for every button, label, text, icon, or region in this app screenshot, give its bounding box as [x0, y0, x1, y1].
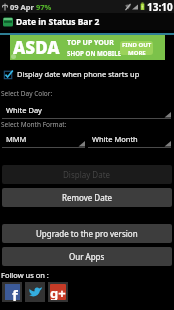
button[interactable]: White Day	[2, 103, 171, 119]
button[interactable]: FIND OUT	[120, 41, 153, 55]
staticText: 97%	[36, 2, 52, 12]
staticText: 13:10	[147, 0, 173, 13]
staticText: MMM	[6, 134, 27, 144]
staticText: Select Day Color:	[1, 89, 53, 98]
staticText: f	[12, 285, 18, 301]
staticText: Remove Date	[62, 192, 113, 203]
button[interactable]: Our Apps	[2, 247, 172, 266]
button[interactable]: Facebook	[2, 282, 22, 302]
button[interactable]: Upgrade to the pro version	[2, 224, 172, 243]
staticText: MORE	[128, 49, 146, 55]
staticText: Upgrade to the pro version	[36, 228, 138, 239]
staticText: White Day	[6, 105, 42, 115]
staticText: FIND OUT	[122, 41, 152, 49]
staticText: Display date when phone starts up	[17, 69, 140, 79]
staticText: Display Date	[63, 169, 111, 180]
button[interactable]: White Month	[88, 132, 171, 148]
staticText: TOP UP YOUR	[67, 38, 114, 48]
staticText: Date in Status Bar 2	[16, 16, 100, 28]
button[interactable]: Google Plus	[48, 282, 68, 302]
staticText: ASDA	[13, 36, 60, 59]
button[interactable]: Advertisement	[10, 35, 165, 60]
staticText: g+	[50, 284, 66, 300]
button[interactable]: MMM	[2, 132, 85, 148]
button[interactable]: Display date when phone starts up	[0, 67, 174, 81]
staticText: SHOP ON MOBILE	[67, 49, 122, 57]
staticText: White Month	[92, 134, 138, 144]
button[interactable]: Remove Date	[2, 188, 172, 207]
staticText: 09 Apr	[10, 2, 34, 12]
staticText: Our Apps	[69, 251, 105, 262]
staticText: Select Month Format:	[1, 120, 67, 129]
button[interactable]: Twitter	[25, 282, 45, 302]
staticText: Follow us on :	[1, 270, 49, 280]
button[interactable]: Display Date	[2, 165, 172, 184]
